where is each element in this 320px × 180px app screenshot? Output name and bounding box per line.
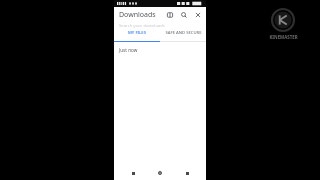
button[interactable]: Search <box>178 9 189 20</box>
staticText: Search your downloads <box>119 23 165 29</box>
button[interactable]: Home <box>152 166 168 180</box>
button[interactable]: Back <box>179 166 195 180</box>
button[interactable]: Grid view <box>164 9 175 20</box>
button[interactable]: Recents <box>125 166 141 180</box>
staticText: SAFE AND SECURE <box>165 30 202 36</box>
staticText: KINEMASTER <box>269 34 298 40</box>
button[interactable]: SAFE AND SECURE <box>160 30 206 36</box>
staticText: Downloads <box>119 10 156 20</box>
staticText: Just now <box>119 47 138 53</box>
staticText: MY FILES <box>128 30 146 36</box>
button[interactable]: Close <box>192 9 203 20</box>
button[interactable]: MY FILES <box>114 30 160 36</box>
